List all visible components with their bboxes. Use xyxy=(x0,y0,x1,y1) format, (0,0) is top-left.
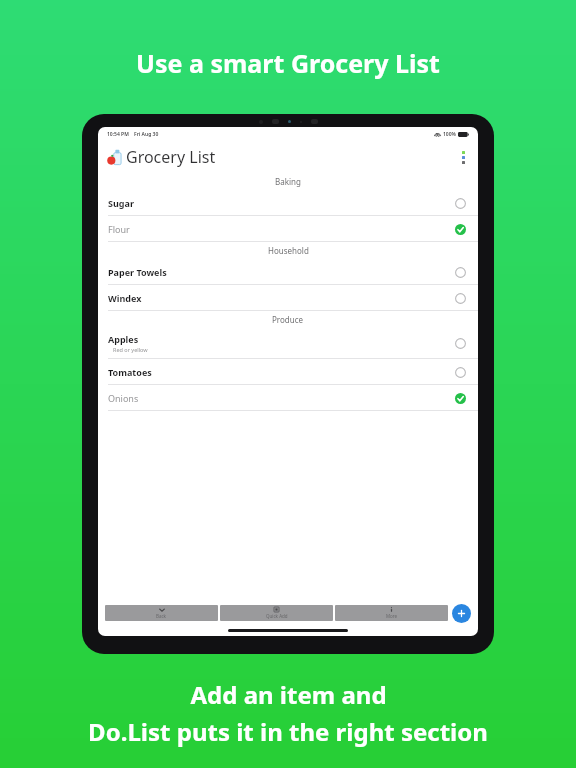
staticText: Sugar xyxy=(108,197,134,209)
button[interactable]: Apples xyxy=(98,328,478,358)
staticText: Use a smart Grocery List xyxy=(136,46,440,80)
staticText: Tomatoes xyxy=(108,366,152,378)
button[interactable]: Mark complete xyxy=(452,195,468,211)
staticText: Red or yellow xyxy=(113,346,148,353)
button[interactable]: Mark complete xyxy=(452,335,468,351)
button[interactable]: Mark incomplete xyxy=(452,221,468,237)
staticText: Add an item and xyxy=(190,678,387,711)
button[interactable]: Mark complete xyxy=(452,290,468,306)
button[interactable]: More xyxy=(335,605,448,621)
staticText: Back xyxy=(156,613,167,619)
staticText: Paper Towels xyxy=(108,266,167,278)
staticText: Quick Add xyxy=(266,613,288,619)
staticText: 10:54 PM xyxy=(107,131,129,138)
button[interactable]: Paper Towels xyxy=(98,259,478,284)
staticText: Baking xyxy=(275,176,301,187)
button[interactable]: Mark complete xyxy=(452,364,468,380)
staticText: Produce xyxy=(272,314,304,325)
staticText: More xyxy=(386,613,398,619)
staticText: Apples xyxy=(108,333,139,345)
staticText: Onions xyxy=(108,392,139,404)
button[interactable]: Quick Add xyxy=(220,605,333,621)
staticText: Household xyxy=(268,245,309,256)
button[interactable]: Add item xyxy=(452,604,471,623)
button[interactable]: Tomatoes xyxy=(98,359,478,384)
button[interactable]: Mark incomplete xyxy=(452,390,468,406)
button[interactable]: Back xyxy=(105,605,218,621)
staticText: Flour xyxy=(108,223,130,235)
staticText: 100% xyxy=(443,131,456,138)
button[interactable]: Flour xyxy=(98,216,478,241)
button[interactable]: Onions xyxy=(98,385,478,410)
button[interactable]: More options xyxy=(458,147,469,168)
button[interactable]: Sugar xyxy=(98,190,478,215)
staticText: Windex xyxy=(108,292,142,304)
button[interactable]: Mark complete xyxy=(452,264,468,280)
button[interactable]: Windex xyxy=(98,285,478,310)
staticText: Fri Aug 30 xyxy=(134,131,159,138)
staticText: Do.List puts it in the right section xyxy=(88,715,488,748)
staticText: Grocery List xyxy=(126,146,216,168)
